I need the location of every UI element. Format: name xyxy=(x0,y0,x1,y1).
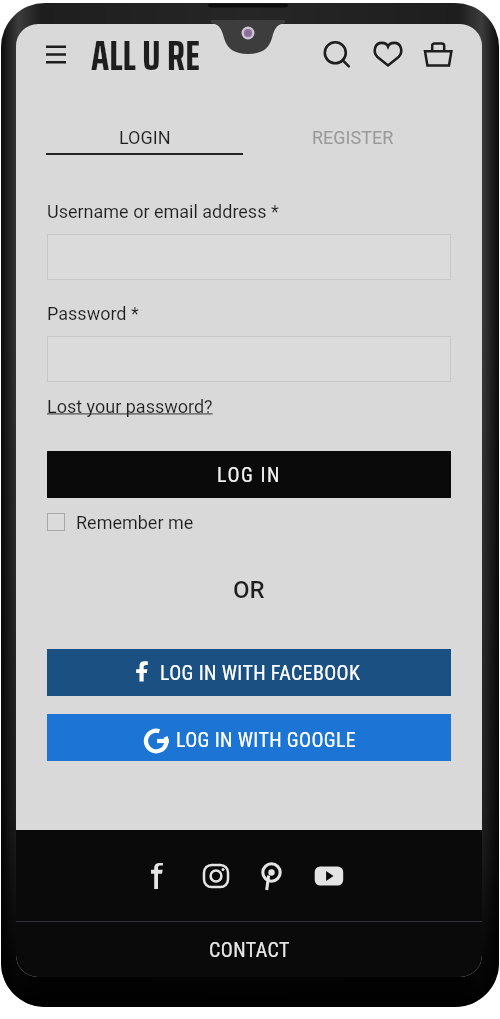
button[interactable]: Pinterest xyxy=(250,855,292,897)
staticText: OR xyxy=(233,576,265,604)
button[interactable]: LOGIN xyxy=(85,122,205,153)
staticText: LOG IN WITH GOOGLE xyxy=(176,728,357,751)
button[interactable]: Search xyxy=(322,40,356,74)
button[interactable]: Remember me xyxy=(47,511,194,533)
button[interactable]: Lost your password? xyxy=(47,396,213,417)
button[interactable]: LOG IN WITH FACEBOOK xyxy=(47,649,451,696)
button[interactable]: LOG IN WITH GOOGLE xyxy=(47,714,451,761)
button[interactable]: REGISTER xyxy=(293,122,413,153)
button[interactable]: Shopping bag xyxy=(421,36,455,70)
button[interactable]: LOG IN xyxy=(47,451,451,498)
button[interactable]: YouTube xyxy=(308,855,350,897)
staticText: Password * xyxy=(47,303,139,324)
staticText: CONTACT xyxy=(209,938,290,961)
button[interactable]: Wishlist xyxy=(371,36,405,70)
staticText: LOG IN WITH FACEBOOK xyxy=(160,661,361,684)
button[interactable]: Facebook xyxy=(141,855,183,897)
button[interactable]: CONTACT xyxy=(16,922,482,977)
button[interactable]: Menu xyxy=(41,34,83,76)
staticText: LOGIN xyxy=(119,127,171,148)
staticText: Remember me xyxy=(76,512,194,533)
button[interactable]: Instagram xyxy=(195,855,237,897)
staticText: REGISTER xyxy=(312,127,394,148)
button[interactable] xyxy=(47,234,451,280)
button[interactable] xyxy=(47,336,451,382)
staticText: Username or email address * xyxy=(47,201,279,222)
button[interactable]: ALL U RE xyxy=(91,24,200,89)
staticText: LOG IN xyxy=(217,463,281,486)
